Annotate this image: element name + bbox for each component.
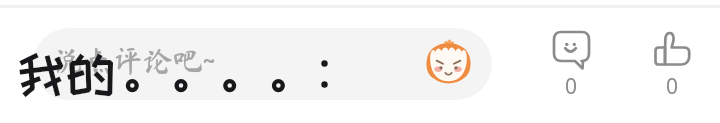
staticText: 0 (666, 72, 679, 100)
button[interactable] (33, 28, 492, 100)
button[interactable]: Like (642, 24, 702, 100)
staticText: 说点评论吧~ (53, 46, 215, 76)
staticText: 我的 (17, 47, 115, 100)
staticText: 0 (565, 72, 578, 100)
button[interactable]: Comments (541, 24, 601, 100)
button[interactable]: Emoji (423, 38, 473, 84)
